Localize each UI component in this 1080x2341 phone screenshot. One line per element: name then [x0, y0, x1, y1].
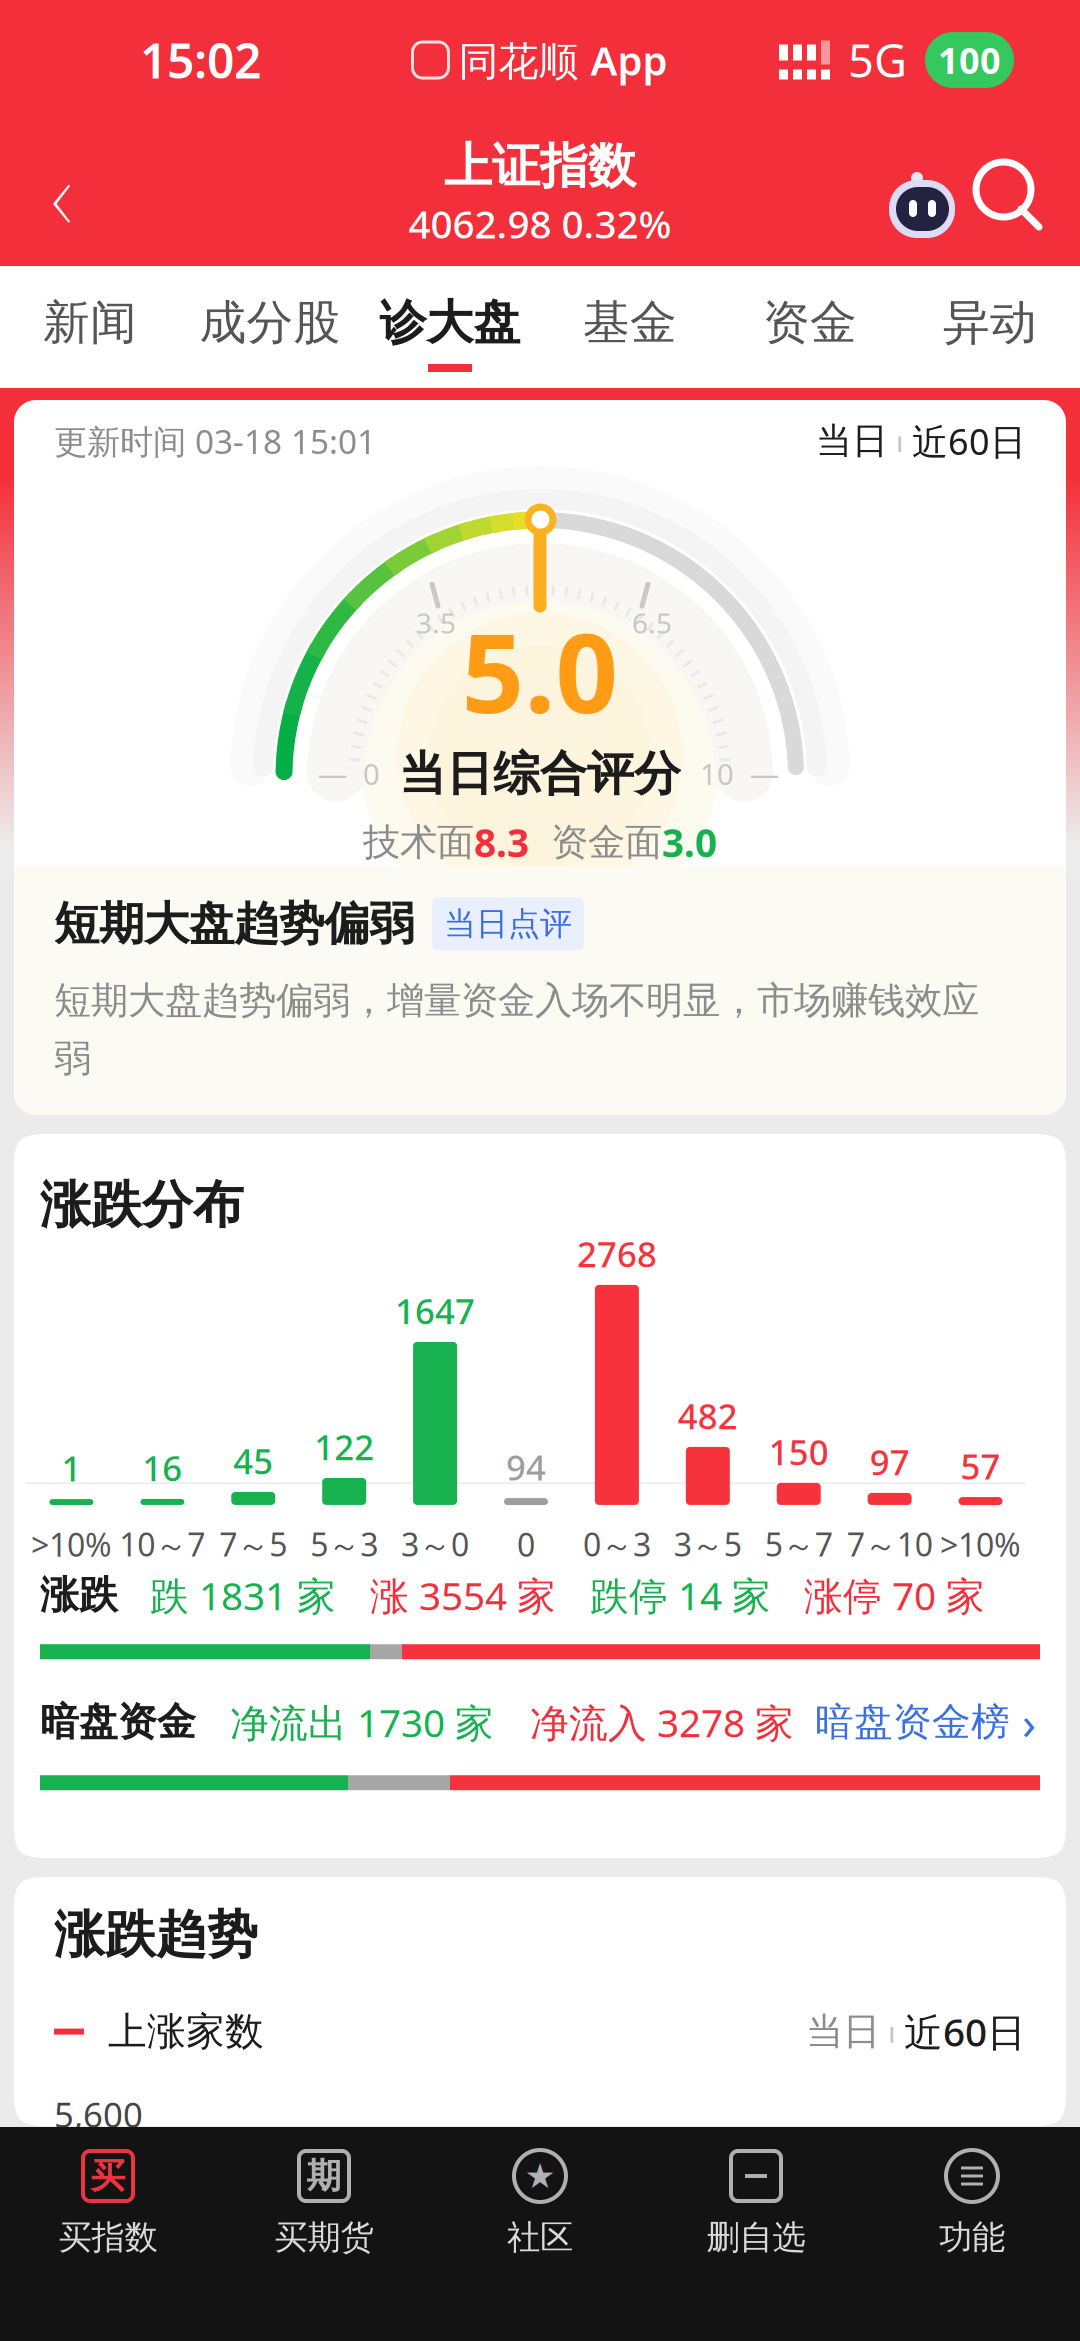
staticText: 买期货 [274, 2217, 373, 2258]
staticText: 涨 3554 家 [370, 1570, 556, 1621]
staticText: 3.0 [662, 817, 717, 868]
staticText: 0～3 [583, 1523, 651, 1566]
button[interactable]: 期 [216, 2127, 432, 2341]
staticText: 1647 [395, 1288, 475, 1334]
staticText: 57 [960, 1443, 1000, 1489]
staticText: 2768 [577, 1231, 657, 1277]
staticText: 150 [769, 1429, 829, 1475]
staticText: >10% [940, 1523, 1021, 1566]
staticText: 94 [506, 1444, 546, 1490]
button[interactable]: AI assistant [880, 132, 958, 254]
staticText: 基金 [583, 294, 677, 351]
staticText: 5.0 [461, 598, 618, 743]
staticText: 买 [90, 2155, 125, 2197]
staticText: 异动 [943, 294, 1037, 351]
button[interactable]: 成分股 [180, 266, 360, 388]
staticText: 1 [61, 1445, 81, 1491]
staticText: 6.5 [632, 604, 672, 641]
staticText: — 0 [318, 754, 380, 793]
staticText: 期 [306, 2155, 341, 2197]
staticText: 净流入 3278 家 [530, 1697, 794, 1748]
staticText: 10 — [700, 754, 779, 793]
staticText: 资金 [763, 294, 857, 351]
staticText: 涨停 70 家 [804, 1570, 985, 1621]
staticText: 新闻 [43, 294, 137, 351]
staticText: 买指数 [58, 2217, 157, 2258]
button[interactable]: 删自选 [648, 2127, 864, 2341]
button[interactable]: Search [958, 132, 1058, 254]
staticText: 7～10 [847, 1523, 933, 1566]
button[interactable]: 资金 [720, 266, 900, 388]
staticText: 8.3 [474, 817, 529, 868]
staticText: 涨跌趋势 [54, 1904, 258, 1966]
button[interactable]: ★ [432, 2127, 648, 2341]
staticText: 技术面 [363, 819, 474, 865]
button[interactable]: 暗盘资金榜 [800, 1687, 1036, 1757]
button[interactable]: Back [0, 131, 124, 255]
staticText: ★ [524, 2156, 555, 2196]
staticText: 3.5 [416, 604, 456, 641]
staticText: 5～3 [310, 1523, 378, 1566]
staticText: 3～5 [674, 1523, 742, 1566]
staticText: 10～7 [119, 1523, 205, 1566]
button[interactable]: 当日 [806, 2009, 880, 2055]
staticText: 5G [848, 30, 907, 90]
staticText: 5～7 [765, 1523, 833, 1566]
staticText: 跌 1831 家 [150, 1570, 336, 1621]
button[interactable]: 新闻 [0, 266, 180, 388]
staticText: 0 [517, 1523, 535, 1566]
staticText: 3～0 [401, 1523, 469, 1566]
staticText: 短期大盘趋势偏弱，增量资金入场不明显，市场赚钱效应 [54, 978, 979, 1024]
staticText: › [1022, 1692, 1036, 1752]
staticText: 上证指数 [444, 137, 636, 196]
staticText: 跌停 14 家 [590, 1570, 771, 1621]
staticText: 4062.98 0.32% [408, 198, 671, 249]
staticText: 97 [870, 1439, 910, 1485]
staticText: 涨跌分布 [40, 1174, 244, 1236]
staticText: 成分股 [199, 294, 340, 351]
staticText: 45 [233, 1438, 273, 1484]
staticText: 16 [142, 1445, 182, 1491]
staticText: 当日 [806, 2009, 880, 2055]
staticText: 涨跌 [40, 1571, 118, 1619]
staticText: 净流出 1730 家 [230, 1697, 494, 1748]
staticText: ı [880, 2012, 904, 2051]
staticText: 15:02 [140, 28, 261, 92]
staticText: 更新时间 03-18 15:01 [54, 419, 376, 463]
button[interactable]: 功能 [864, 2127, 1080, 2341]
staticText: 社区 [507, 2217, 573, 2258]
button[interactable]: 买 [0, 2127, 216, 2341]
staticText: 功能 [939, 2217, 1005, 2258]
button[interactable]: 基金 [540, 266, 720, 388]
button[interactable]: 当日 [816, 419, 888, 463]
staticText: 当日点评 [444, 904, 572, 943]
staticText: 弱 [54, 1035, 91, 1081]
staticText: 短期大盘趋势偏弱 [54, 896, 414, 952]
staticText: ‹ [51, 127, 73, 258]
staticText: 近60日 [904, 2006, 1026, 2057]
staticText: 暗盘资金 [40, 1698, 196, 1746]
staticText: ı [888, 421, 912, 460]
staticText: 5,600 [54, 2091, 143, 2137]
button[interactable]: 诊大盘 [360, 266, 540, 388]
staticText: 近60日 [912, 417, 1026, 465]
staticText: 122 [314, 1424, 374, 1470]
staticText: 删自选 [706, 2217, 805, 2258]
staticText: 当日综合评分 [399, 745, 681, 803]
button[interactable]: 近60日 [912, 417, 1026, 465]
button[interactable]: 近60日 [904, 2006, 1026, 2057]
staticText: 100 [938, 36, 1001, 84]
staticText: 7～5 [219, 1523, 287, 1566]
staticText: >10% [31, 1523, 112, 1566]
staticText: 暗盘资金榜 [815, 1698, 1010, 1746]
button[interactable]: 异动 [900, 266, 1080, 388]
staticText: 资金面 [529, 819, 662, 865]
staticText: 当日 [816, 419, 888, 463]
staticText: 482 [678, 1393, 738, 1439]
staticText: 上涨家数 [84, 2008, 264, 2055]
staticText: 诊大盘 [379, 294, 520, 351]
staticText: 同花顺 App [458, 33, 667, 86]
